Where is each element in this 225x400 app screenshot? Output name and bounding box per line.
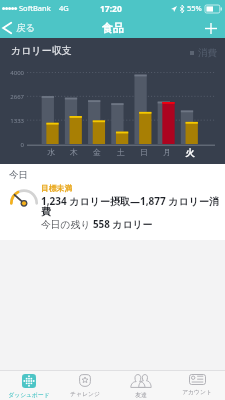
button[interactable]: Add xyxy=(199,18,225,38)
staticText: 戻る xyxy=(16,22,36,34)
staticText: 土 xyxy=(115,147,127,157)
staticText: カロリー収支 xyxy=(11,44,72,57)
staticText: チャレンジ xyxy=(70,390,100,397)
staticText: 今日 xyxy=(9,169,28,181)
button[interactable]: チャレンジ xyxy=(57,371,113,400)
staticText: 1,234 カロリー摂取—1,877 カロリー消費 xyxy=(41,194,220,218)
staticText: 今日の残り 558 カロリー xyxy=(41,218,153,231)
staticText: 4G xyxy=(59,3,69,13)
staticText: 日 xyxy=(138,147,150,157)
button[interactable]: 友達 xyxy=(113,371,169,400)
staticText: ダッシュボード xyxy=(8,391,50,398)
staticText: 2667 xyxy=(2,93,24,101)
staticText: 目標未満 xyxy=(41,183,73,193)
staticText: SoftBank xyxy=(19,3,51,13)
staticText: 0 xyxy=(2,141,24,149)
staticText: アカウント xyxy=(182,388,212,395)
staticText: 4000 xyxy=(2,69,24,77)
staticText: 金 xyxy=(91,147,103,157)
staticText: 17:20 xyxy=(100,3,122,15)
staticText: 消費 xyxy=(198,47,217,59)
staticText: 友達 xyxy=(135,391,147,398)
button[interactable]: ダッシュボード xyxy=(0,371,57,400)
button[interactable]: 戻る xyxy=(0,18,44,38)
button[interactable]: アカウント xyxy=(169,371,225,400)
staticText: 月 xyxy=(161,147,173,157)
button[interactable]: 目標未満 xyxy=(0,164,225,240)
staticText: 水 xyxy=(45,147,57,157)
staticText: 55% xyxy=(187,3,202,13)
staticText: 1333 xyxy=(2,117,24,125)
staticText: 木 xyxy=(68,147,80,157)
staticText: 火 xyxy=(184,147,196,158)
staticText: 食品 xyxy=(102,21,124,35)
